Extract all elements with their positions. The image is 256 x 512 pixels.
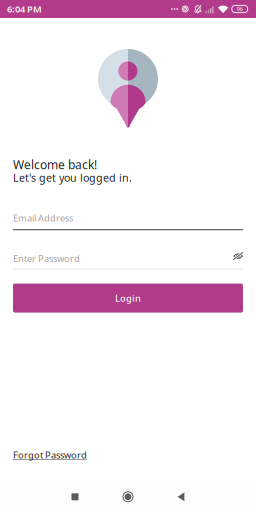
staticText: Let's get you logged in. [13, 171, 132, 185]
staticText: 96 [237, 5, 243, 13]
staticText: Email Address [13, 212, 73, 224]
button[interactable]: Back [154, 482, 207, 512]
staticText: Welcome back! [13, 157, 97, 173]
staticText: 6:04 PM [7, 3, 42, 15]
staticText: Login [115, 292, 141, 304]
button[interactable]: Login [13, 284, 243, 313]
staticText: Forgot Password [13, 449, 87, 461]
staticText: Enter Password [13, 252, 80, 265]
button[interactable]: Recents [48, 482, 101, 512]
button[interactable]: Forgot Password [13, 449, 87, 461]
button[interactable]: Home [101, 482, 154, 512]
button[interactable]: Show password [232, 254, 243, 263]
